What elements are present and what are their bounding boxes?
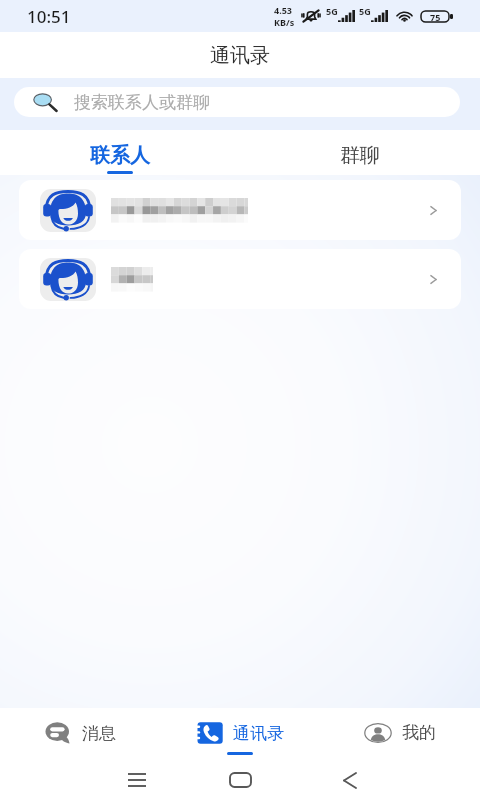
staticText: 10:51 — [27, 5, 71, 28]
staticText: 75 — [430, 11, 441, 22]
staticText: 5G — [326, 5, 338, 17]
button[interactable]: 联系人 — [0, 130, 240, 174]
button[interactable] — [19, 180, 461, 240]
button[interactable]: 搜索联系人或群聊 — [14, 87, 460, 117]
button[interactable]: Contacts — [160, 708, 320, 760]
staticText: KB/s — [274, 16, 295, 28]
button[interactable]: Back — [330, 760, 370, 800]
button[interactable]: Home — [220, 760, 260, 800]
button[interactable]: Messages — [0, 708, 160, 760]
staticText: 通讯录 — [210, 43, 270, 68]
button[interactable]: 群聊 — [240, 130, 480, 168]
other: Messages — [45, 722, 70, 744]
button[interactable]: Profile — [320, 708, 480, 760]
staticText: 群聊 — [340, 143, 380, 168]
other: Contacts — [197, 722, 223, 744]
staticText: 我的 — [402, 722, 436, 743]
staticText: 5G — [359, 5, 371, 17]
other: Profile — [364, 723, 392, 743]
staticText: 联系人 — [90, 143, 150, 168]
staticText: 消息 — [82, 723, 116, 744]
staticText: 4.53 — [274, 4, 292, 16]
staticText: 搜索联系人或群聊 — [74, 92, 210, 113]
button[interactable]: Recent apps — [117, 760, 157, 800]
button[interactable] — [19, 249, 461, 309]
staticText: 通讯录 — [233, 723, 284, 744]
